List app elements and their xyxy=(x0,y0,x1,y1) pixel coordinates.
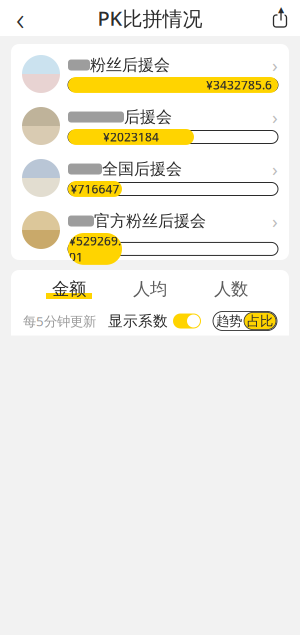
staticText: › xyxy=(272,105,278,129)
staticText: › xyxy=(272,157,278,181)
staticText: 全国后援会 xyxy=(102,159,182,179)
staticText: ¥529269.01 xyxy=(69,233,121,265)
staticText: ¥3432785.6 xyxy=(206,77,272,93)
staticText: ¥2023184 xyxy=(103,129,159,145)
button[interactable]: 全国后援会 xyxy=(11,154,289,202)
staticText: 显示系数 xyxy=(108,312,168,330)
staticText: ¥716647 xyxy=(70,181,119,197)
staticText: 每5分钟更新 xyxy=(23,312,96,330)
staticText: ‹ xyxy=(16,0,24,39)
staticText: PK比拼情况 xyxy=(97,5,202,31)
button[interactable]: 人均 xyxy=(127,276,173,302)
button[interactable]: Share xyxy=(260,0,300,36)
staticText: 趋势 xyxy=(216,313,242,329)
button[interactable]: 金额 xyxy=(46,276,92,302)
button[interactable]: 显示系数 xyxy=(108,312,201,330)
staticText: › xyxy=(272,53,278,77)
staticText: 人数 xyxy=(214,278,248,300)
button[interactable]: 官方粉丝后援会 xyxy=(11,206,289,254)
staticText: 金额 xyxy=(52,278,86,300)
staticText: 粉丝后援会 xyxy=(90,55,170,75)
staticText: 官方粉丝后援会 xyxy=(94,211,206,231)
staticText: › xyxy=(272,209,278,233)
button[interactable]: 后援会 xyxy=(11,102,289,150)
button[interactable]: Back xyxy=(0,0,40,36)
staticText: 占比 xyxy=(247,313,273,329)
button[interactable]: 粉丝后援会 xyxy=(11,50,289,98)
button[interactable]: 趋势 xyxy=(213,311,277,330)
staticText: ▲ xyxy=(278,5,284,14)
staticText: 人均 xyxy=(133,278,167,300)
button[interactable]: 人数 xyxy=(208,276,254,302)
staticText: 后援会 xyxy=(124,107,172,127)
